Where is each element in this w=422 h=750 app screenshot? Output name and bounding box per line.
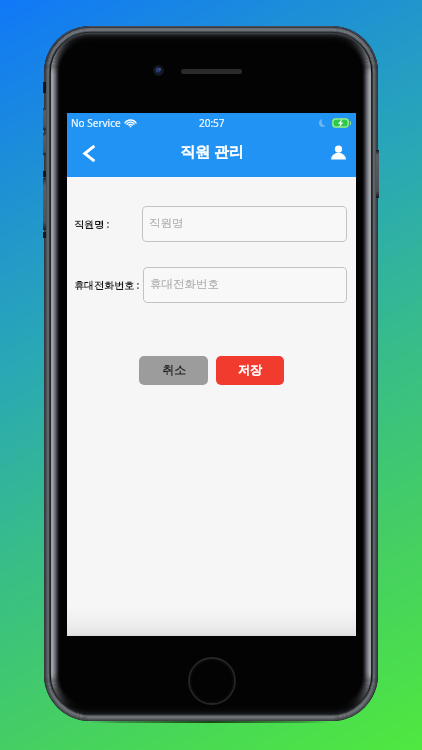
button[interactable]: 휴대전화번호: [143, 267, 347, 303]
staticText: 직원명 :: [74, 217, 110, 231]
button[interactable]: Account: [320, 130, 356, 174]
staticText: 20:57: [199, 116, 225, 130]
button[interactable]: Back: [71, 131, 107, 175]
staticText: 직원 관리: [180, 141, 244, 161]
staticText: 취소: [162, 362, 186, 377]
staticText: 휴대전화번호: [150, 277, 219, 291]
button[interactable]: 직원명: [142, 206, 347, 242]
button[interactable]: 취소: [139, 356, 208, 385]
staticText: 직원명: [149, 216, 184, 230]
staticText: No Service: [71, 116, 121, 130]
button[interactable]: 저장: [216, 356, 284, 385]
staticText: 휴대전화번호 :: [74, 278, 140, 292]
staticText: 저장: [238, 362, 262, 377]
